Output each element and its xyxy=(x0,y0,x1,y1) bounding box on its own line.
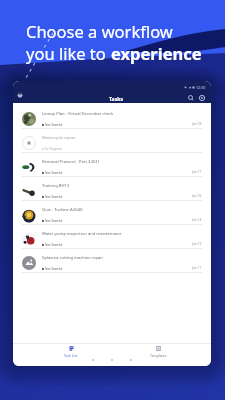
button[interactable]: Search xyxy=(187,94,195,102)
staticText: Jan 12 xyxy=(192,241,202,245)
staticText: Tasks xyxy=(109,95,124,102)
button[interactable]: Lineup Plan - Virtual December check xyxy=(13,105,211,129)
staticText: Templates xyxy=(150,353,167,358)
staticText: Water pump inspection and maintenance xyxy=(42,231,122,237)
button[interactable]: Task List xyxy=(60,346,82,358)
button[interactable]: Training BH13 xyxy=(13,177,211,201)
staticText: Motorcycle repair xyxy=(42,135,76,141)
staticText: Jan 17 xyxy=(192,169,202,173)
button[interactable]: Removal Protocol - Part 34531 xyxy=(13,153,211,177)
staticText: Lineup Plan - Virtual December check xyxy=(42,111,114,117)
staticText: Training BH13 xyxy=(42,183,70,189)
staticText: Not Started xyxy=(45,123,63,127)
staticText: 12:30 xyxy=(196,85,206,90)
staticText: Task List xyxy=(64,353,78,358)
button[interactable]: Water pump inspection and maintenance xyxy=(13,225,211,249)
staticText: Choose a workflow xyxy=(26,20,173,42)
staticText: In Progress xyxy=(45,147,63,151)
button[interactable]: Quiz - Turbine A4G4K xyxy=(13,201,211,225)
staticText: Jan 18 xyxy=(192,121,202,125)
staticText: Jan 14 xyxy=(192,217,202,221)
staticText: Not Started xyxy=(45,267,63,271)
button[interactable]: Motorcycle repair xyxy=(13,129,211,153)
staticText: Quiz - Turbine A4G4K xyxy=(42,207,83,213)
button[interactable]: Menu xyxy=(17,92,23,98)
staticText: Not Started xyxy=(45,171,63,175)
staticText: experience xyxy=(111,42,202,64)
button[interactable]: Templates xyxy=(147,346,169,358)
staticText: Not Started xyxy=(45,243,63,247)
staticText: Jan 11 xyxy=(192,265,202,269)
staticText: Not Started xyxy=(45,219,63,223)
staticText: Xplasma cutting machine repair xyxy=(42,255,104,261)
staticText: Removal Protocol - Part 34531 xyxy=(42,159,100,165)
staticText: you like to xyxy=(26,42,111,64)
staticText: Not Started xyxy=(45,195,63,199)
button[interactable]: Xplasma cutting machine repair xyxy=(13,249,211,273)
button[interactable]: Settings xyxy=(198,94,206,102)
staticText: Jan 16 xyxy=(192,193,202,197)
